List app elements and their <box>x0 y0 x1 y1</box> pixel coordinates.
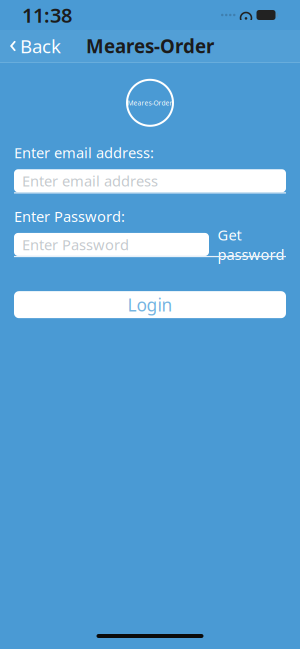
staticText: Back <box>20 34 61 58</box>
button[interactable]: Login <box>14 291 286 318</box>
staticText: Enter Password <box>22 235 129 254</box>
staticText: Meares-Order <box>86 34 214 58</box>
staticText: Meares-Order <box>127 98 172 107</box>
staticText: Enter email address: <box>14 143 154 162</box>
staticText: 11:38 <box>22 2 72 28</box>
staticText: Enter email address <box>22 171 158 190</box>
staticText: Get password <box>217 225 284 264</box>
button[interactable]: Back <box>0 28 70 64</box>
staticText: Enter Password: <box>14 206 125 226</box>
button[interactable]: Get password <box>209 233 286 256</box>
staticText: Login <box>127 293 172 316</box>
